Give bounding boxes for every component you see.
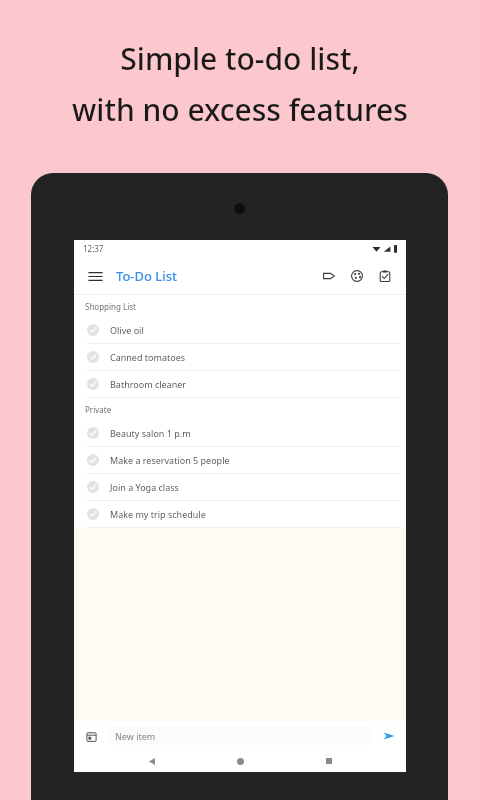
staticText: Make a reservation 5 people — [110, 454, 230, 466]
button[interactable]: Theme — [346, 265, 368, 287]
staticText: Private — [85, 404, 112, 415]
staticText: Olive oil — [110, 324, 144, 336]
staticText: with no excess features — [72, 89, 408, 130]
staticText: New item — [115, 730, 156, 742]
staticText: Simple to-do list, — [120, 38, 360, 79]
button[interactable]: Join a Yoga class — [74, 474, 406, 501]
button[interactable]: Open navigation menu — [84, 265, 106, 287]
button[interactable]: Olive oil — [74, 317, 406, 344]
staticText: Make my trip schedule — [110, 508, 206, 520]
button[interactable]: Recent apps — [318, 750, 340, 772]
staticText: Beauty salon 1 p.m — [110, 427, 191, 439]
button[interactable]: Add item — [380, 727, 398, 745]
button[interactable]: Back — [141, 750, 163, 772]
button[interactable]: Pick a date — [82, 727, 100, 745]
button[interactable]: Home — [229, 750, 251, 772]
button[interactable]: New item — [106, 726, 373, 745]
button[interactable]: Bathroom cleaner — [74, 371, 406, 398]
button[interactable]: Select items — [374, 265, 396, 287]
button[interactable]: To-Do List — [116, 267, 178, 285]
staticText: Bathroom cleaner — [110, 378, 187, 390]
button[interactable]: Beauty salon 1 p.m — [74, 420, 406, 447]
button[interactable]: Make my trip schedule — [74, 501, 406, 528]
button[interactable]: Labels — [318, 265, 340, 287]
staticText: Shopping List — [85, 301, 136, 312]
staticText: 12:37 — [83, 243, 104, 254]
button[interactable]: Canned tomatoes — [74, 344, 406, 371]
button[interactable]: Make a reservation 5 people — [74, 447, 406, 474]
staticText: Canned tomatoes — [110, 351, 186, 363]
staticText: Join a Yoga class — [110, 481, 179, 493]
